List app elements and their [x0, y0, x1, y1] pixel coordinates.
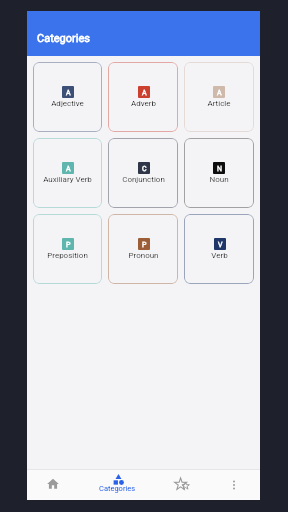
staticText: Pronoun	[128, 251, 159, 260]
button[interactable]: A	[108, 62, 178, 132]
button[interactable]: C	[108, 138, 178, 208]
staticText: Preposition	[47, 251, 88, 260]
staticText: C	[142, 165, 147, 173]
staticText: Noun	[209, 175, 229, 184]
staticText: Auxiliary Verb	[43, 175, 92, 184]
button[interactable]: Favorites	[156, 470, 208, 500]
button[interactable]: P	[33, 214, 102, 284]
staticText: Adverb	[131, 99, 156, 108]
button[interactable]: A	[184, 62, 254, 132]
staticText: N	[217, 165, 222, 173]
staticText: Verb	[211, 251, 228, 260]
button[interactable]: A	[33, 62, 102, 132]
button[interactable]: N	[184, 138, 254, 208]
staticText: V	[218, 241, 223, 249]
button[interactable]: More options	[208, 470, 260, 500]
button[interactable]: A	[33, 138, 102, 208]
staticText: Categories	[99, 484, 136, 493]
button[interactable]: P	[108, 214, 178, 284]
button[interactable]: V	[184, 214, 254, 284]
staticText: A	[217, 89, 222, 97]
staticText: A	[66, 89, 71, 97]
staticText: A	[66, 165, 71, 173]
staticText: A	[142, 89, 147, 97]
staticText: P	[66, 241, 71, 249]
staticText: Categories	[37, 32, 90, 45]
button[interactable]: Home	[27, 470, 78, 500]
staticText: Article	[207, 99, 231, 108]
staticText: Adjective	[51, 99, 84, 108]
button[interactable]: Categories	[78, 470, 156, 500]
staticText: Conjunction	[122, 175, 165, 184]
staticText: P	[142, 241, 147, 249]
